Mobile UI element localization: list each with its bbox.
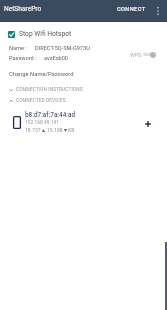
staticText: WPS	[130, 52, 142, 58]
button[interactable]: b8:d7:af:7a:44:ad	[0, 108, 167, 135]
staticText: 192.168.49.141	[25, 119, 60, 125]
staticText: avzEsb00	[44, 55, 68, 62]
button[interactable]: CONNECTION INSTRUCTIONS	[0, 86, 167, 94]
staticText: 18.737	[25, 127, 41, 133]
button[interactable]: Change Name/Password	[7, 70, 76, 79]
staticText: CONNECTED DEVICES	[16, 98, 66, 104]
button[interactable]: Stop Wifi Hotspot	[0, 28, 167, 40]
staticText: 15.188	[47, 127, 63, 133]
staticText: CONNECT	[117, 6, 146, 13]
staticText: b8:d7:af:7a:44:ad	[25, 111, 76, 119]
staticText: Change Name/Password	[9, 71, 74, 78]
staticText: DIRECT-5Q-SM-G973U	[35, 45, 90, 52]
staticText: NetSharePro	[4, 5, 42, 13]
button[interactable]: WPS	[128, 49, 158, 60]
button[interactable]: Add device	[141, 117, 155, 131]
button[interactable]: CONNECTED DEVICES	[0, 97, 167, 105]
staticText: Name :	[9, 45, 27, 52]
staticText: Stop Wifi Hotspot	[19, 30, 72, 38]
staticText: Password :	[9, 55, 37, 62]
staticText: CONNECTION INSTRUCTIONS	[16, 87, 83, 93]
button[interactable]: More options	[151, 4, 165, 18]
staticText: KB	[68, 127, 75, 133]
button[interactable]: CONNECT	[113, 3, 150, 16]
